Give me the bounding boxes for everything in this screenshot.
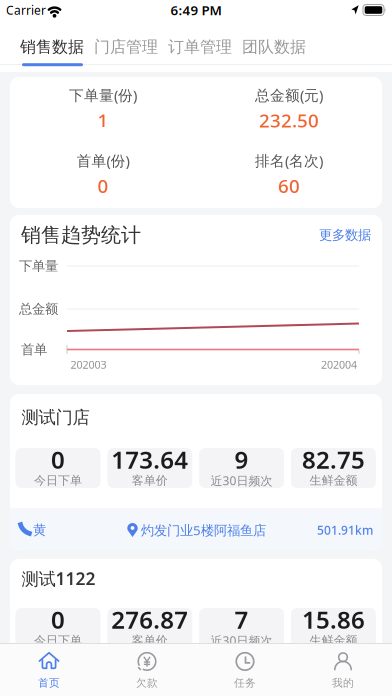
staticText: 测试门店 [21, 407, 89, 428]
staticText: 排名(名次) [255, 151, 323, 170]
staticText: 下单量 [19, 258, 58, 274]
staticText: 订单管理 [168, 37, 232, 57]
staticText: Carrier [6, 2, 46, 18]
staticText: 9 [235, 444, 249, 475]
staticText: 0 [51, 444, 65, 475]
staticText: 客单价 [132, 633, 168, 648]
button[interactable]: 门店管理 [94, 32, 158, 62]
button[interactable]: 测试门店 [10, 394, 382, 550]
staticText: 232.50 [259, 108, 319, 133]
staticText: 下单量(份) [69, 85, 137, 105]
staticText: 首页 [38, 676, 60, 689]
staticText: 我的 [332, 676, 354, 689]
button[interactable]: 任务 [196, 645, 294, 695]
staticText: 501.91km [317, 522, 373, 538]
staticText: 总金额 [19, 301, 58, 317]
staticText: 7 [235, 604, 249, 635]
staticText: 生鲜金额 [309, 473, 357, 488]
button[interactable]: 团队数据 [242, 32, 306, 62]
staticText: 灼发门业5楼阿福鱼店 [141, 521, 266, 539]
button[interactable]: 欠款 [98, 645, 196, 695]
button[interactable]: 更多数据 [291, 223, 371, 247]
button[interactable]: 我的 [294, 645, 392, 695]
staticText: 客单价 [132, 473, 168, 488]
staticText: 任务 [234, 676, 256, 689]
staticText: 黄 [33, 522, 46, 538]
staticText: 82.75 [302, 444, 365, 475]
staticText: 今日下单 [34, 633, 82, 648]
staticText: 1 [97, 108, 108, 133]
staticText: 首单(份) [76, 151, 129, 170]
button[interactable]: 订单管理 [168, 32, 232, 62]
staticText: 0 [51, 604, 65, 635]
staticText: 团队数据 [242, 37, 306, 57]
staticText: 总金额(元) [255, 85, 323, 105]
staticText: 6:49 PM [170, 1, 221, 19]
staticText: 更多数据 [319, 227, 371, 243]
staticText: 今日下单 [34, 473, 82, 488]
staticText: 202004 [321, 357, 357, 372]
staticText: 173.64 [111, 444, 188, 475]
staticText: 202003 [70, 357, 106, 372]
staticText: 60 [278, 173, 300, 198]
staticText: 15.86 [302, 604, 365, 635]
staticText: 欠款 [136, 676, 158, 689]
staticText: 276.87 [111, 604, 188, 635]
button[interactable]: 首页 [0, 645, 98, 695]
staticText: 销售数据 [20, 37, 84, 57]
staticText: 销售趋势统计 [21, 223, 141, 247]
staticText: 近30日频次 [211, 632, 273, 648]
staticText: 生鲜金额 [309, 633, 357, 648]
button[interactable]: 销售数据 [20, 32, 84, 62]
staticText: 近30日频次 [211, 472, 273, 488]
button[interactable]: 黄 [10, 510, 382, 550]
staticText: 门店管理 [94, 37, 158, 57]
staticText: 首单 [21, 341, 47, 358]
button[interactable]: 测试1122 [10, 559, 382, 696]
staticText: 0 [97, 173, 108, 198]
staticText: 测试1122 [21, 567, 95, 590]
